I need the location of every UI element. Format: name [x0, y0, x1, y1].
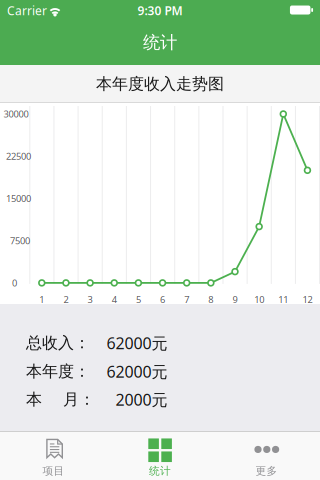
staticText: 10 — [254, 293, 264, 306]
staticText: 9:30 PM — [137, 2, 182, 18]
staticText: 7 — [184, 293, 189, 306]
staticText: 本年度收入走势图 — [96, 74, 224, 94]
staticText: Carrier — [7, 2, 47, 18]
staticText: 6 — [160, 293, 165, 306]
staticText: 本年度： — [26, 362, 90, 381]
staticText: 9 — [232, 293, 237, 306]
staticText: 1 — [39, 293, 44, 306]
staticText: 本 月： — [26, 390, 95, 409]
staticText: 5 — [136, 293, 141, 306]
staticText: 2 — [63, 293, 68, 306]
staticText: 更多 — [256, 464, 278, 477]
staticText: 30000 — [3, 108, 28, 120]
staticText: 2000元 — [115, 389, 167, 410]
staticText: 0 — [12, 277, 17, 289]
staticText: 7500 — [10, 234, 30, 247]
staticText: 11 — [278, 293, 288, 306]
staticText: 统计 — [143, 32, 177, 53]
staticText: 22500 — [6, 150, 31, 162]
staticText: 项目 — [42, 464, 64, 477]
staticText: 3 — [88, 293, 93, 306]
staticText: 统计 — [149, 464, 171, 477]
button[interactable]: 更多 — [213, 433, 320, 480]
staticText: 12 — [302, 293, 312, 306]
button[interactable]: 统计 — [107, 433, 213, 480]
staticText: 62000元 — [106, 361, 167, 382]
staticText: 总收入： — [26, 333, 90, 353]
button[interactable]: 项目 — [0, 433, 107, 480]
staticText: 4 — [112, 293, 117, 306]
staticText: 62000元 — [106, 332, 167, 354]
staticText: 15000 — [6, 192, 31, 205]
staticText: 8 — [208, 293, 213, 306]
